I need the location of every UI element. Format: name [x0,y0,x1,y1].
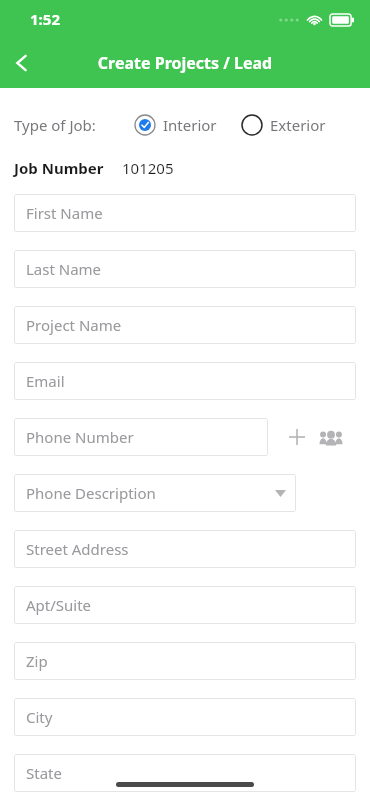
staticText: Email [26,371,65,391]
button[interactable]: City [14,698,356,736]
staticText: First Name [26,203,103,223]
button[interactable]: First Name [14,194,356,232]
button[interactable]: Phone Number [14,418,268,456]
staticText: Create Projects / Lead [0,52,370,74]
staticText: Project Name [26,315,122,335]
staticText: Type of Job: [14,115,96,135]
button[interactable]: Last Name [14,250,356,288]
staticText: Phone Description [26,483,156,503]
staticText: Interior [163,115,217,135]
button[interactable]: Apt/Suite [14,586,356,624]
staticText: Job Number [14,158,104,178]
staticText: 101205 [122,158,174,178]
staticText: Apt/Suite [26,595,92,615]
button[interactable]: Back [0,41,44,85]
button[interactable]: Choose from contacts [316,422,346,452]
staticText: Zip [26,651,48,671]
button[interactable]: Phone Description dropdown [14,474,296,512]
staticText: State [26,763,62,783]
staticText: Last Name [26,259,102,279]
button[interactable]: Exterior [241,111,326,139]
staticText: Exterior [270,115,326,135]
staticText: City [26,707,53,727]
button[interactable]: Email [14,362,356,400]
button[interactable]: Add phone number [284,424,310,450]
staticText: Phone Number [26,427,134,447]
button[interactable]: Project Name [14,306,356,344]
button[interactable]: State [14,754,356,792]
staticText: Street Address [26,539,129,559]
button[interactable]: Interior [134,111,217,139]
staticText: 1:52 [30,9,60,29]
button[interactable]: Street Address [14,530,356,568]
button[interactable]: Zip [14,642,356,680]
